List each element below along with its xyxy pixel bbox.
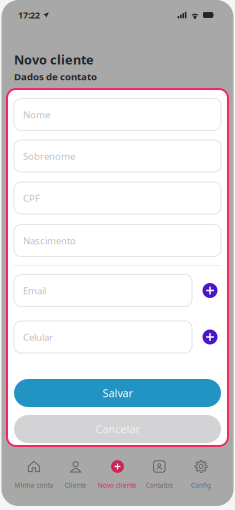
button[interactable]: Adicionar	[199, 321, 221, 353]
staticText: Cancelar	[95, 422, 139, 436]
button[interactable]: Adicionar	[199, 274, 221, 306]
button[interactable]: Contatos	[138, 460, 180, 490]
staticText: Config	[191, 481, 211, 490]
staticText: CPF	[23, 191, 40, 205]
staticText: Dados de contato	[14, 70, 97, 83]
button[interactable]: Email	[14, 274, 192, 306]
button[interactable]: Minha conta	[13, 460, 55, 490]
button[interactable]: Salvar	[14, 379, 221, 407]
button[interactable]: CPF	[14, 182, 221, 214]
staticText: Minha conta	[14, 481, 53, 490]
staticText: 17:22	[18, 9, 40, 21]
staticText: Celular	[23, 330, 53, 344]
button[interactable]: Config	[180, 460, 222, 490]
staticText: Email	[23, 284, 46, 297]
button[interactable]: Cliente	[55, 460, 97, 490]
button[interactable]: Celular	[14, 321, 192, 353]
staticText: Novo cliente	[14, 51, 94, 68]
button[interactable]: Novo cliente	[97, 460, 138, 490]
staticText: Contatos	[146, 481, 173, 490]
staticText: Cliente	[65, 481, 87, 490]
staticText: Salvar	[102, 386, 132, 400]
button[interactable]: Nascimento	[14, 224, 221, 256]
button[interactable]: Cancelar	[14, 415, 221, 443]
staticText: Nome	[23, 108, 50, 121]
staticText: Nascimento	[23, 234, 76, 247]
staticText: Novo cliente	[98, 481, 137, 490]
staticText: Sobrenome	[23, 149, 75, 163]
button[interactable]: Sobrenome	[14, 140, 221, 172]
button[interactable]: Nome	[14, 98, 221, 130]
